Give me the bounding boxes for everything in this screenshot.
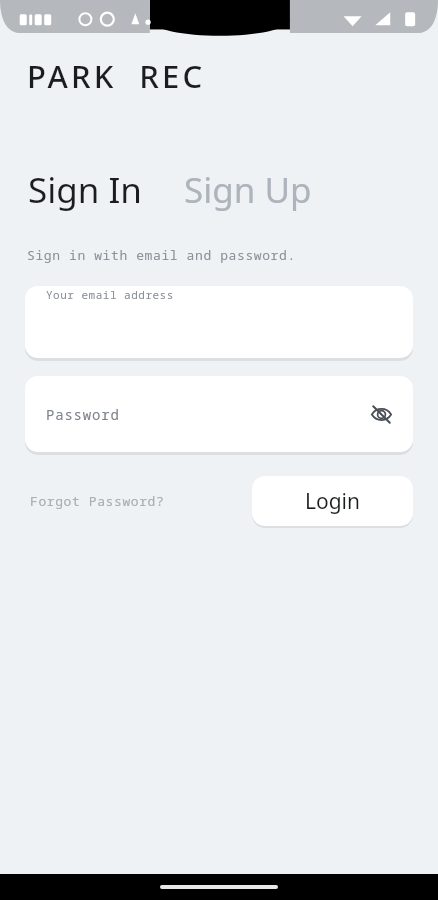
staticText: Sign In (28, 166, 142, 214)
staticText: Sign in with email and password. (27, 246, 296, 264)
staticText: Login (305, 487, 361, 516)
button[interactable]: Forgot Password? (26, 484, 169, 518)
staticText: Your email address (46, 287, 174, 302)
button[interactable]: Show password (361, 394, 401, 434)
button[interactable]: Password (25, 376, 413, 452)
staticText: Password (46, 405, 120, 424)
button[interactable]: Sign Up (182, 162, 314, 218)
button[interactable]: Sign In (26, 162, 144, 218)
button[interactable]: Your email address (25, 286, 413, 358)
staticText: PARK REC (27, 55, 206, 97)
button[interactable]: Login (252, 476, 413, 526)
staticText: Forgot Password? (30, 492, 165, 510)
staticText: Sign Up (184, 166, 312, 214)
